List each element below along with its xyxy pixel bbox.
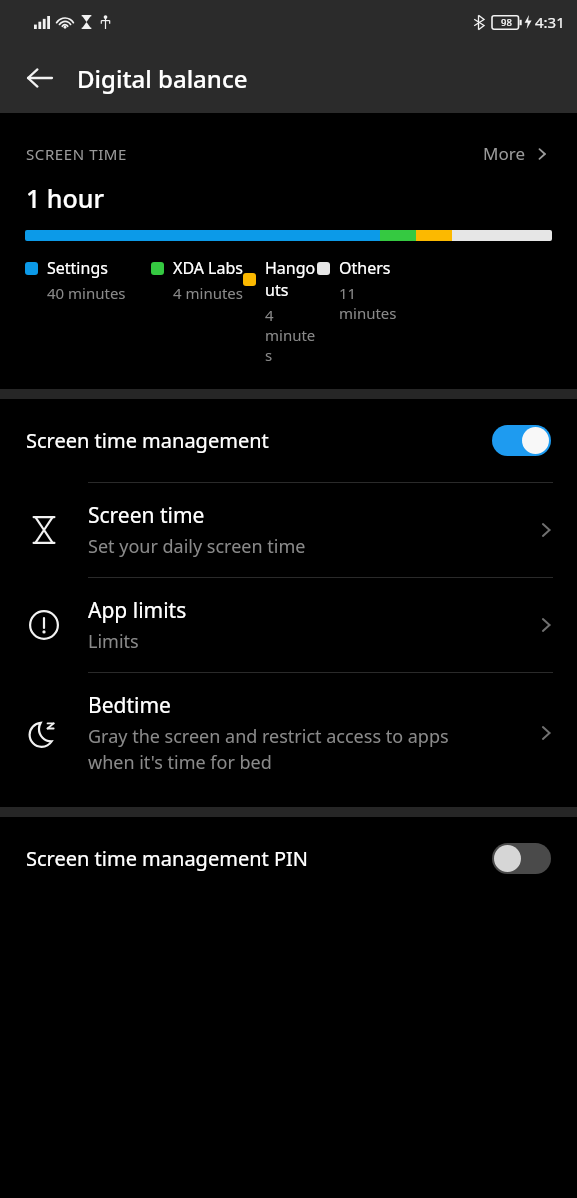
staticText: SCREEN TIME: [26, 144, 127, 164]
staticText: XDA Labs: [173, 257, 243, 279]
staticText: 4 minutes: [265, 305, 317, 365]
button[interactable]: Bedtime: [0, 673, 577, 793]
staticText: 40 minutes: [47, 283, 126, 303]
button[interactable]: Back: [12, 50, 68, 106]
staticText: Others: [339, 257, 391, 279]
button[interactable]: Screen time: [0, 483, 577, 577]
staticText: Hangouts: [265, 257, 317, 301]
staticText: Bedtime: [88, 691, 171, 720]
staticText: Gray the screen and restrict access to a…: [88, 724, 449, 775]
staticText: 11 minutes: [339, 283, 397, 323]
staticText: 4 minutes: [173, 283, 243, 303]
staticText: Digital balance: [77, 62, 248, 95]
staticText: 4:31: [535, 12, 565, 32]
staticText: 98: [501, 16, 512, 29]
button[interactable]: Screen time management PIN: [0, 817, 577, 900]
button[interactable]: Screen time management: [0, 399, 577, 482]
staticText: Limits: [88, 629, 139, 654]
staticText: Settings: [47, 257, 108, 279]
staticText: Screen time: [88, 501, 205, 530]
staticText: Screen time management PIN: [26, 845, 492, 872]
staticText: Set your daily screen time: [88, 534, 306, 559]
button[interactable]: SCREEN TIME: [0, 139, 577, 168]
staticText: App limits: [88, 596, 187, 625]
staticText: Screen time management: [26, 427, 492, 454]
button[interactable]: App limits: [0, 578, 577, 672]
staticText: More: [483, 142, 525, 165]
staticText: 1 hour: [26, 181, 105, 215]
